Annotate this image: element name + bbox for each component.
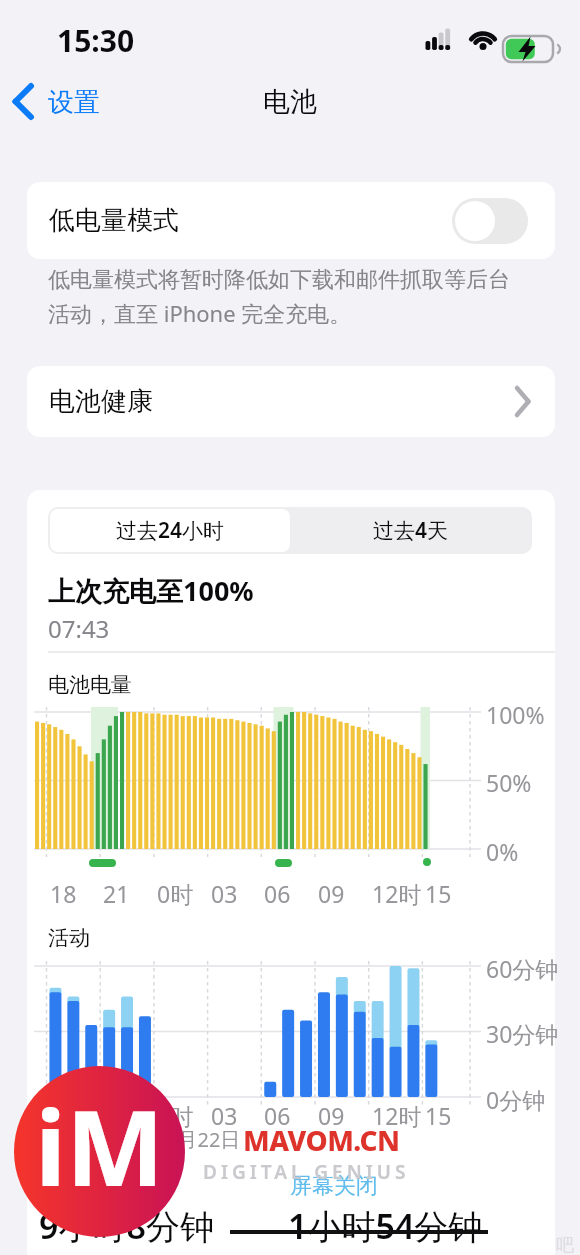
- staticText: 4月22日: [166, 1126, 241, 1153]
- staticText: 18: [50, 1100, 77, 1131]
- staticText: 屏幕关闭: [290, 1172, 378, 1200]
- staticText: 06: [264, 878, 291, 909]
- button[interactable]: [452, 198, 528, 244]
- button[interactable]: 过去24小时: [50, 509, 290, 552]
- staticText: 06: [264, 1100, 291, 1131]
- staticText: 03: [211, 1100, 238, 1131]
- staticText: 过去24小时: [116, 516, 225, 545]
- staticText: 09: [318, 878, 345, 909]
- staticText: 低电量模式: [49, 204, 179, 237]
- staticText: 电池: [263, 85, 317, 119]
- button[interactable]: 过去4天: [290, 507, 532, 554]
- staticText: 上次充电至100%: [48, 572, 254, 609]
- staticText: 0时: [157, 878, 194, 909]
- button[interactable]: 电池健康: [27, 366, 555, 437]
- staticText: 18: [50, 878, 77, 909]
- staticText: 电池健康: [49, 385, 153, 418]
- staticText: 07:43: [48, 612, 110, 645]
- staticText: 12时: [372, 878, 422, 909]
- staticText: 1小时54分钟: [288, 1203, 483, 1249]
- staticText: 过去4天: [373, 516, 449, 545]
- staticText: 0时: [157, 1100, 194, 1131]
- staticText: 15:30: [57, 20, 135, 61]
- staticText: 0分钟: [486, 1084, 546, 1115]
- staticText: MAVOM.CN: [243, 1121, 400, 1159]
- staticText: 屏幕打开: [48, 1172, 136, 1200]
- button[interactable]: 低电量模式: [27, 182, 555, 259]
- staticText: 0%: [486, 836, 519, 867]
- staticText: 设置: [48, 86, 100, 119]
- staticText: 30分钟: [486, 1018, 559, 1049]
- staticText: 15: [425, 1100, 452, 1131]
- staticText: 21: [103, 878, 130, 909]
- staticText: 100%: [486, 699, 545, 730]
- staticText: 50%: [486, 767, 532, 798]
- staticText: 9小时8分钟: [39, 1203, 214, 1249]
- staticText: 活动: [48, 925, 90, 951]
- staticText: DIGITAL GENIUS: [203, 1159, 410, 1185]
- staticText: 低电量模式将暂时降低如下载和邮件抓取等后台 活动，直至 iPhone 完全充电。: [48, 266, 510, 328]
- staticText: 电池电量: [48, 672, 132, 698]
- staticText: 03: [211, 878, 238, 909]
- button[interactable]: 设置: [8, 82, 138, 122]
- staticText: 15: [425, 878, 452, 909]
- staticText: 12时: [372, 1100, 422, 1131]
- staticText: 吧: [556, 1234, 574, 1255]
- staticText: iM: [35, 1075, 165, 1217]
- staticText: 21: [103, 1100, 130, 1131]
- staticText: 60分钟: [486, 953, 559, 984]
- staticText: 09: [318, 1100, 345, 1131]
